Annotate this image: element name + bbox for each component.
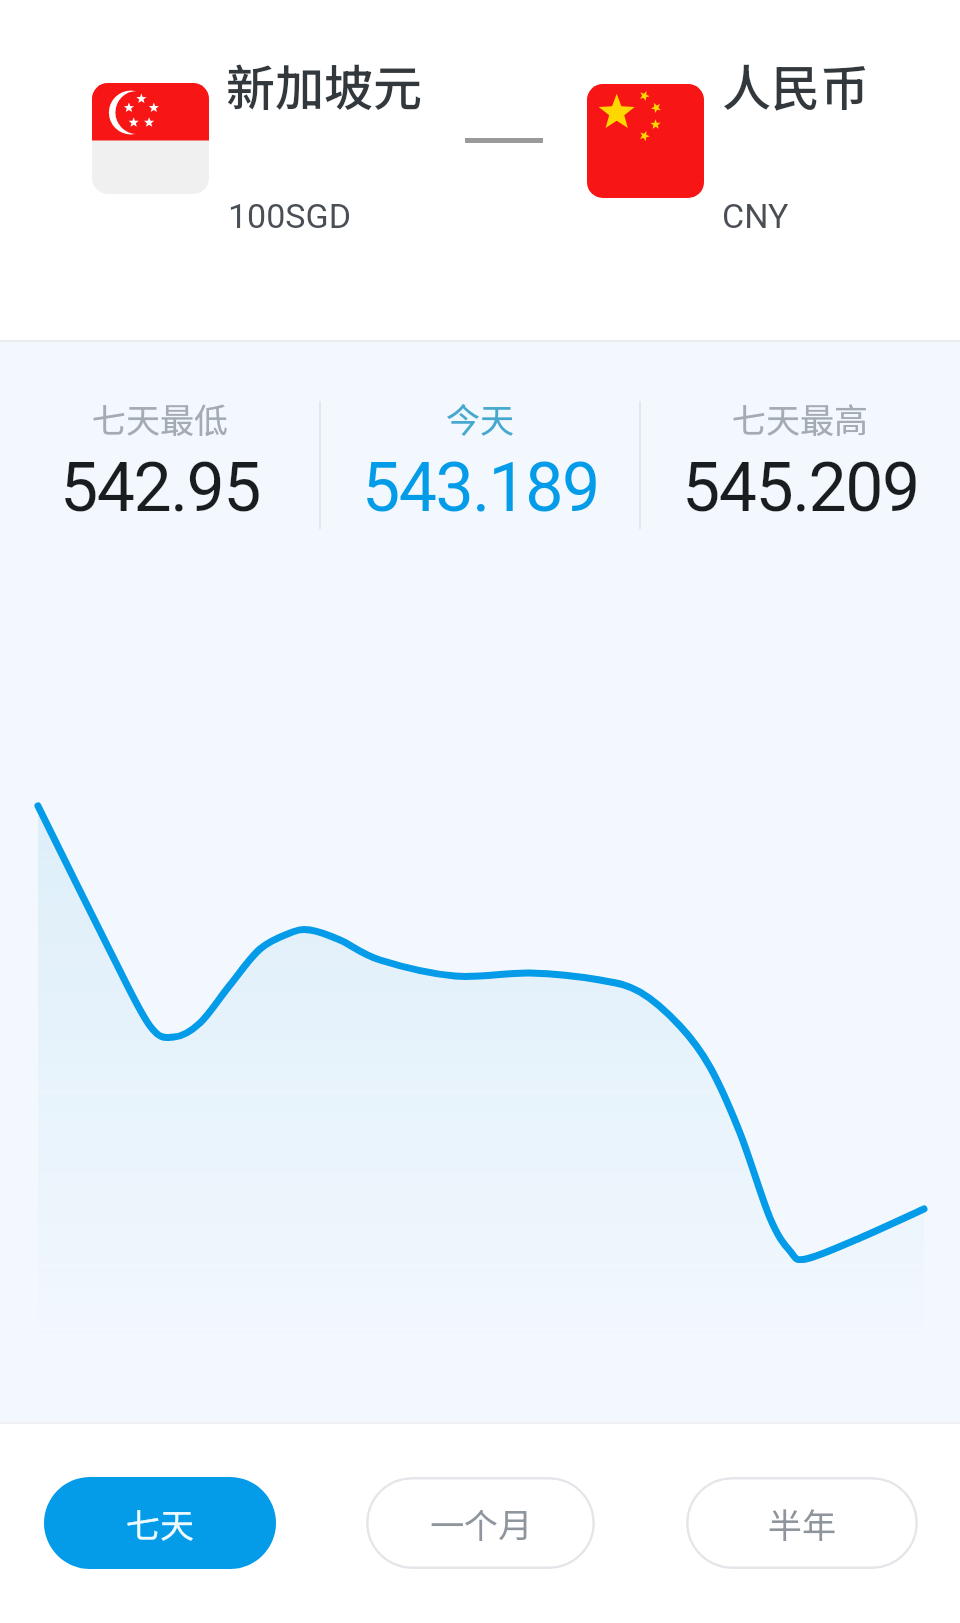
staticText: 一个月 (430, 1499, 532, 1548)
button[interactable]: 人民币 (575, 40, 905, 250)
button[interactable]: 新加坡元 (80, 40, 440, 250)
staticText: 今天 (446, 394, 514, 443)
staticText: 542.95 (60, 448, 261, 528)
staticText: 七天最高 (732, 394, 868, 443)
button[interactable]: Swap currencies (455, 110, 553, 170)
button[interactable]: 半年 (686, 1477, 918, 1569)
button[interactable]: 七天最低 (0, 340, 320, 528)
button[interactable]: 七天 (44, 1477, 276, 1569)
staticText: 七天最低 (92, 394, 228, 443)
staticText: 半年 (768, 1499, 836, 1548)
staticText: 新加坡元 (226, 49, 423, 120)
staticText: 七天 (126, 1499, 194, 1548)
button[interactable]: 七天最高 (640, 340, 960, 528)
staticText: 545.209 (682, 448, 919, 528)
button[interactable]: 今天 (320, 340, 640, 528)
staticText: 人民币 (722, 49, 870, 120)
staticText: 100SGD (228, 196, 351, 236)
staticText: 543.189 (362, 448, 599, 528)
button[interactable]: 一个月 (366, 1477, 595, 1569)
staticText: CNY (722, 196, 789, 236)
